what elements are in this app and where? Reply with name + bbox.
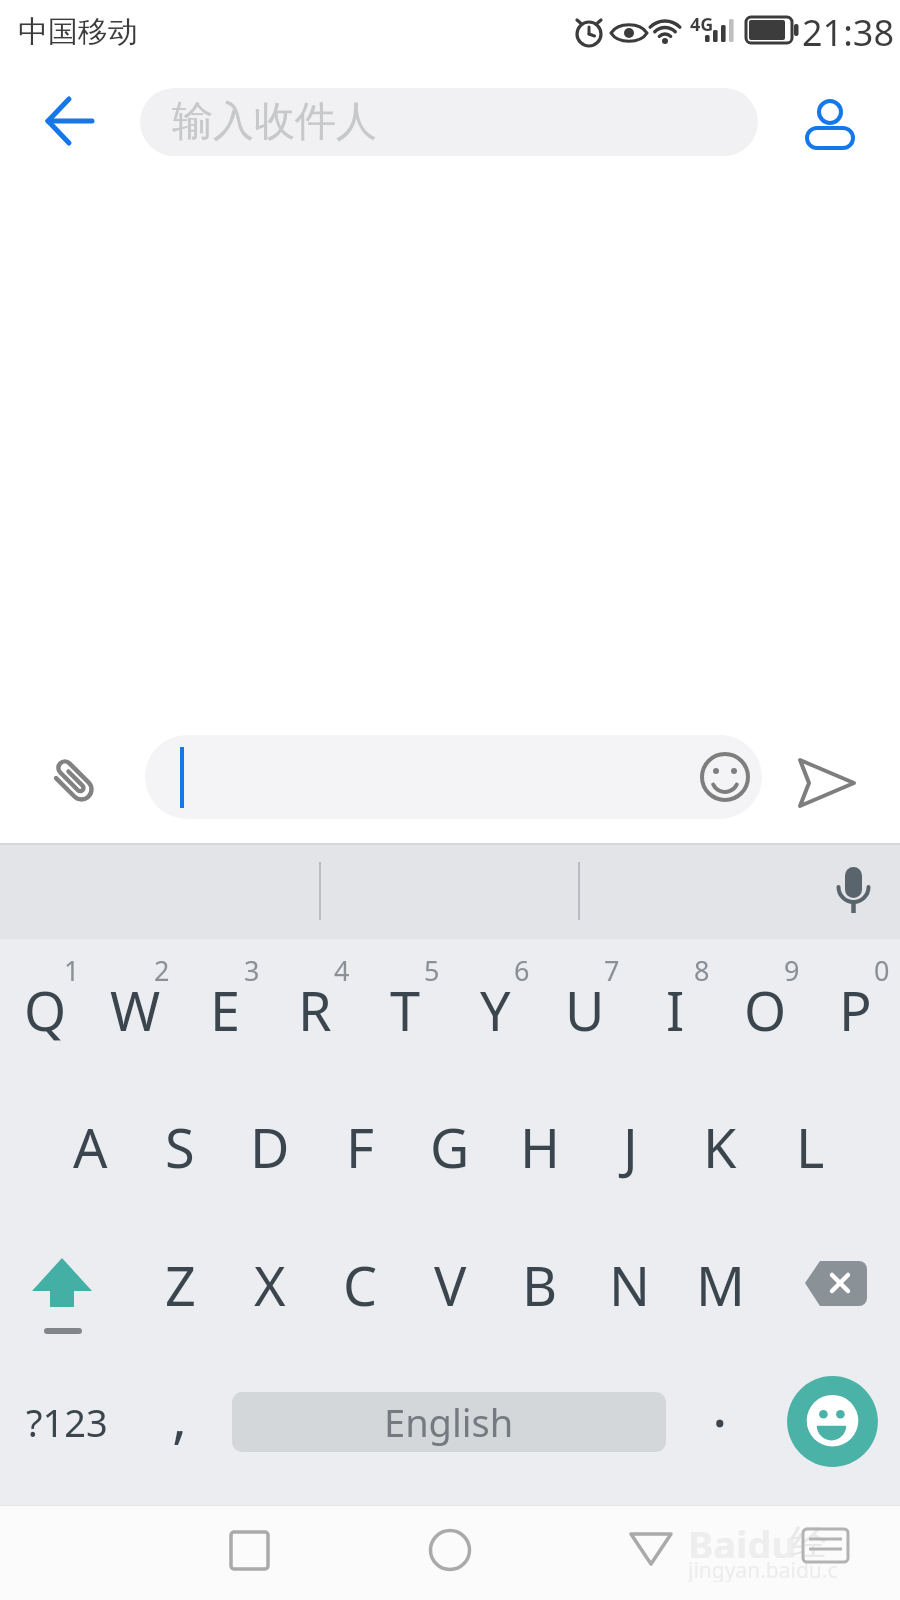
button[interactable]: T <box>360 950 450 1070</box>
staticText: D <box>250 1110 290 1184</box>
staticText: B <box>522 1248 558 1322</box>
staticText: A <box>73 1110 108 1184</box>
staticText: K <box>703 1110 737 1184</box>
staticText: W <box>110 973 161 1047</box>
staticText: R <box>298 973 332 1047</box>
staticText: P <box>839 973 872 1047</box>
staticText: 3 <box>244 952 260 988</box>
button[interactable]: Z <box>135 1223 225 1347</box>
staticText: L <box>796 1110 825 1184</box>
staticText: 6 <box>514 952 530 988</box>
staticText: E <box>210 973 241 1047</box>
staticText: U <box>565 973 605 1047</box>
staticText: 4G <box>690 12 714 34</box>
staticText: jingyan.baidu.com <box>688 1556 848 1582</box>
button[interactable] <box>25 1245 101 1341</box>
staticText: 中国移动 <box>18 13 138 51</box>
button[interactable]: K <box>675 1085 765 1209</box>
button[interactable] <box>798 90 862 154</box>
button[interactable]: Q <box>0 950 90 1070</box>
button[interactable] <box>28 86 102 156</box>
button[interactable]: O <box>720 950 810 1070</box>
button[interactable]: B <box>495 1223 585 1347</box>
staticText: English <box>384 1396 514 1448</box>
button[interactable] <box>37 745 109 817</box>
button[interactable]: D <box>225 1085 315 1209</box>
staticText: 4 <box>334 952 350 988</box>
staticText: 9 <box>784 952 800 988</box>
staticText: V <box>434 1248 467 1322</box>
staticText: O <box>744 973 787 1047</box>
staticText: F <box>346 1110 375 1184</box>
staticText: 5 <box>424 952 440 988</box>
staticText: S <box>165 1110 195 1184</box>
button[interactable]: English <box>232 1392 666 1452</box>
button[interactable]: F <box>315 1085 405 1209</box>
button[interactable]: ?123 <box>14 1385 120 1459</box>
button[interactable] <box>615 1515 685 1585</box>
button[interactable]: W <box>90 950 180 1070</box>
staticText: 0 <box>874 952 890 988</box>
staticText: . <box>712 1365 728 1444</box>
button[interactable] <box>695 747 755 807</box>
staticText: Y <box>480 973 511 1047</box>
button[interactable]: X <box>225 1223 315 1347</box>
staticText: J <box>623 1110 638 1184</box>
staticText: ?123 <box>26 1396 108 1448</box>
button[interactable]: I <box>630 950 720 1070</box>
button[interactable]: 输入收件人 <box>140 88 758 156</box>
staticText: 2 <box>154 952 170 988</box>
button[interactable] <box>787 1376 878 1467</box>
button[interactable]: L <box>765 1085 855 1209</box>
staticText: 1 <box>64 952 80 988</box>
staticText: 21:38 <box>802 8 895 54</box>
staticText: N <box>609 1248 651 1322</box>
button[interactable]: S <box>135 1085 225 1209</box>
button[interactable]: E <box>180 950 270 1070</box>
staticText: C <box>343 1248 378 1322</box>
staticText: H <box>520 1110 561 1184</box>
button[interactable] <box>145 735 762 819</box>
button[interactable]: A <box>45 1085 135 1209</box>
button[interactable] <box>415 1515 485 1585</box>
staticText: M <box>696 1248 745 1322</box>
staticText: I <box>666 973 685 1047</box>
staticText: 8 <box>694 952 710 988</box>
button[interactable]: V <box>405 1223 495 1347</box>
button[interactable] <box>788 748 872 818</box>
button[interactable]: C <box>315 1223 405 1347</box>
staticText: 7 <box>604 952 620 988</box>
staticText: Baidu <box>688 1518 797 1558</box>
button[interactable]: N <box>585 1223 675 1347</box>
button[interactable]: G <box>405 1085 495 1209</box>
button[interactable]: J <box>585 1085 675 1209</box>
staticText: T <box>390 973 421 1047</box>
button[interactable] <box>215 1515 285 1585</box>
button[interactable] <box>826 855 882 927</box>
staticText: G <box>430 1110 470 1184</box>
button[interactable]: P <box>810 950 900 1070</box>
staticText: Q <box>24 973 67 1047</box>
button[interactable]: . <box>690 1364 750 1444</box>
staticText: Z <box>165 1248 196 1322</box>
button[interactable]: Y <box>450 950 540 1070</box>
staticText: , <box>172 1378 188 1454</box>
button[interactable]: H <box>495 1085 585 1209</box>
staticText: X <box>254 1248 286 1322</box>
staticText: 经验 <box>790 1520 860 1560</box>
button[interactable]: R <box>270 950 360 1070</box>
button[interactable] <box>795 1250 877 1316</box>
button[interactable]: M <box>675 1223 765 1347</box>
button[interactable]: , <box>150 1376 210 1456</box>
staticText: 输入收件人 <box>172 96 377 148</box>
button[interactable]: U <box>540 950 630 1070</box>
